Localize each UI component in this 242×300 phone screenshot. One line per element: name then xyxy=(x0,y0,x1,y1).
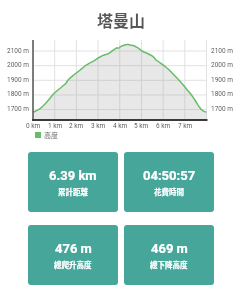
staticText: 1900 m xyxy=(211,76,233,84)
staticText: 2100 m xyxy=(7,47,29,55)
staticText: 花費時間 xyxy=(154,186,184,197)
staticText: 4 km xyxy=(113,122,128,130)
staticText: 累計距離 xyxy=(58,186,88,197)
staticText: 2 km xyxy=(69,122,84,130)
staticText: 2000 m xyxy=(211,61,233,69)
staticText: 3 km xyxy=(91,122,106,130)
staticText: 7 km xyxy=(178,122,193,130)
staticText: 1800 m xyxy=(211,90,233,98)
button[interactable]: 476 m xyxy=(28,225,118,285)
staticText: 1700 m xyxy=(7,105,29,113)
staticText: 總爬升高度 xyxy=(54,259,92,270)
staticText: 6 km xyxy=(156,122,171,130)
staticText: 高度 xyxy=(44,130,58,140)
staticText: 塔曼山 xyxy=(0,8,242,31)
staticText: 2000 m xyxy=(7,61,29,69)
staticText: 476 m xyxy=(55,241,92,256)
button[interactable]: 6.39 km xyxy=(28,152,118,212)
staticText: 0 km xyxy=(26,122,41,130)
staticText: 1800 m xyxy=(7,90,29,98)
staticText: 1 km xyxy=(48,122,63,130)
button[interactable]: 469 m xyxy=(124,225,214,285)
staticText: 469 m xyxy=(151,241,188,256)
staticText: 04:50:57 xyxy=(143,168,196,183)
button[interactable]: 04:50:57 xyxy=(124,152,214,212)
staticText: 1900 m xyxy=(7,76,29,84)
staticText: 5 km xyxy=(134,122,149,130)
staticText: 2100 m xyxy=(211,47,233,55)
staticText: 1700 m xyxy=(211,105,233,113)
staticText: 6.39 km xyxy=(49,168,97,183)
staticText: 總下降高度 xyxy=(150,259,188,270)
